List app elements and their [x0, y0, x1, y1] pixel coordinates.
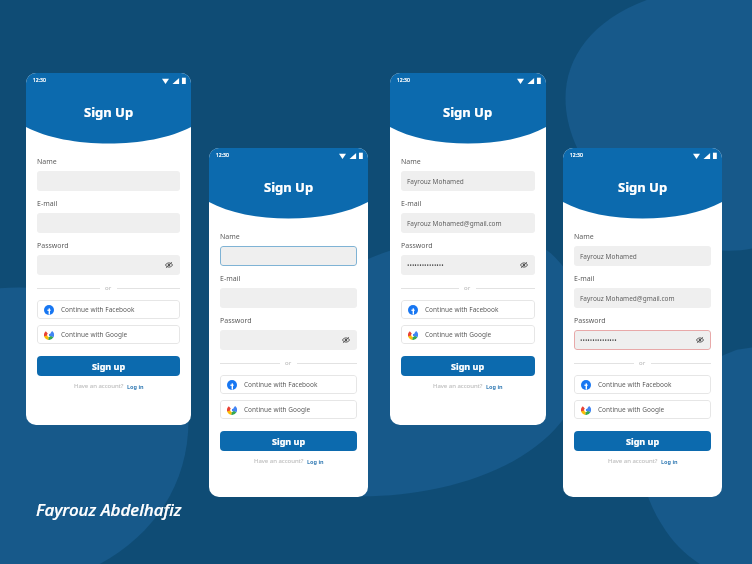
staticText: Continue with Google — [425, 330, 492, 339]
staticText: or — [639, 359, 646, 367]
staticText: Fayrouz Mohamed@gmail.com — [580, 294, 675, 303]
button[interactable]: Fayrouz Mohamed@gmail.com — [574, 288, 711, 308]
staticText: Sign up — [272, 435, 306, 447]
staticText: Continue with Google — [61, 330, 128, 339]
button[interactable]: Sign up — [37, 356, 180, 376]
staticText: Log in — [486, 383, 503, 390]
button[interactable]: Sign up — [401, 356, 535, 376]
staticText: Have an account? — [433, 382, 483, 390]
staticText: Sign Up — [618, 178, 668, 196]
button[interactable]: Log in — [307, 458, 324, 465]
staticText: Password — [574, 316, 606, 326]
button[interactable]: ••••••••••••••• — [401, 255, 535, 275]
staticText: E-mail — [220, 274, 241, 284]
button[interactable]: Log in — [486, 383, 503, 390]
button[interactable]: Continue with Google — [37, 325, 180, 344]
staticText: Continue with Facebook — [425, 305, 499, 314]
button[interactable]: Continue with Google — [220, 400, 357, 419]
button[interactable]: Toggle password visibility — [164, 260, 174, 270]
staticText: 12:30 — [216, 152, 229, 159]
staticText: Continue with Google — [598, 405, 665, 414]
button[interactable]: Log in — [661, 458, 678, 465]
button[interactable]: Continue with Google — [401, 325, 535, 344]
button[interactable]: Sign up — [574, 431, 711, 451]
staticText: Fayrouz Mohamed — [580, 252, 637, 261]
button[interactable]: ••••••••••••••• — [574, 330, 711, 350]
button[interactable]: Continue with Facebook — [574, 375, 711, 394]
staticText: Password — [401, 241, 433, 251]
staticText: Sign Up — [264, 178, 314, 196]
button[interactable]: Toggle password visibility — [519, 260, 529, 270]
button[interactable]: Log in — [127, 383, 144, 390]
staticText: Fayrouz Mohamed@gmail.com — [407, 219, 502, 228]
staticText: Name — [37, 157, 57, 167]
staticText: Fayrouz Mohamed — [407, 177, 464, 186]
staticText: 12:30 — [397, 77, 410, 84]
button[interactable]: Fayrouz Mohamed — [574, 246, 711, 266]
staticText: Log in — [661, 458, 678, 465]
staticText: ••••••••••••••• — [580, 336, 617, 345]
staticText: Log in — [307, 458, 324, 465]
staticText: 12:30 — [570, 152, 583, 159]
staticText: E-mail — [37, 199, 58, 209]
button[interactable]: Fayrouz Mohamed@gmail.com — [401, 213, 535, 233]
button[interactable]: Toggle password visibility — [341, 335, 351, 345]
staticText: Password — [220, 316, 252, 326]
staticText: Password — [37, 241, 69, 251]
staticText: Sign up — [92, 360, 126, 372]
staticText: Sign up — [451, 360, 485, 372]
staticText: Sign Up — [443, 103, 493, 121]
button[interactable]: Continue with Facebook — [220, 375, 357, 394]
staticText: Continue with Facebook — [244, 380, 318, 389]
button[interactable]: Toggle password visibility — [695, 335, 705, 345]
staticText: Log in — [127, 383, 144, 390]
staticText: Fayrouz Abdelhafiz — [36, 498, 182, 521]
button[interactable] — [220, 246, 357, 266]
button[interactable]: Sign up — [220, 431, 357, 451]
staticText: Continue with Facebook — [598, 380, 672, 389]
button[interactable]: Continue with Facebook — [401, 300, 535, 319]
staticText: Have an account? — [254, 457, 304, 465]
staticText: Name — [574, 232, 594, 242]
staticText: Continue with Facebook — [61, 305, 135, 314]
button[interactable]: Toggle password visibility — [37, 255, 180, 275]
staticText: Sign up — [626, 435, 660, 447]
button[interactable]: Continue with Facebook — [37, 300, 180, 319]
staticText: Name — [401, 157, 421, 167]
staticText: ••••••••••••••• — [407, 261, 444, 270]
staticText: Continue with Google — [244, 405, 311, 414]
button[interactable]: Toggle password visibility — [220, 330, 357, 350]
button[interactable]: Fayrouz Mohamed — [401, 171, 535, 191]
staticText: Sign Up — [84, 103, 134, 121]
staticText: E-mail — [574, 274, 595, 284]
staticText: or — [285, 359, 292, 367]
staticText: Have an account? — [608, 457, 658, 465]
staticText: Name — [220, 232, 240, 242]
staticText: Have an account? — [74, 382, 124, 390]
staticText: or — [105, 284, 112, 292]
staticText: 12:30 — [33, 77, 46, 84]
staticText: or — [464, 284, 471, 292]
button[interactable]: Continue with Google — [574, 400, 711, 419]
staticText: E-mail — [401, 199, 422, 209]
